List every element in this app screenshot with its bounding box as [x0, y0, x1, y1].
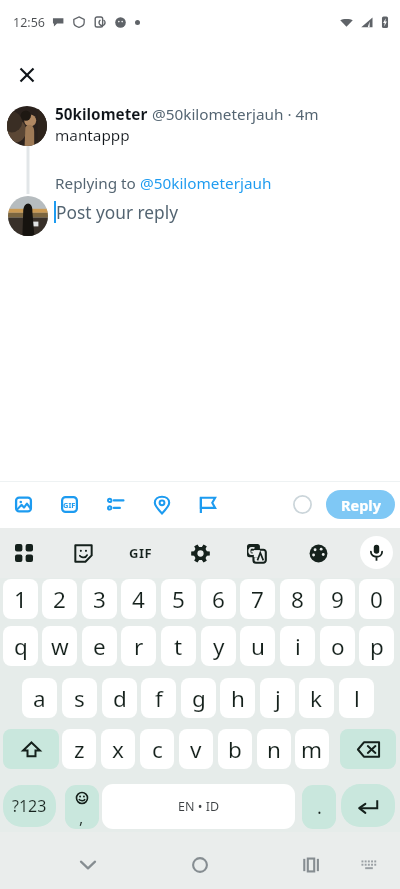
button[interactable]: e: [82, 626, 117, 666]
button[interactable]: j: [260, 678, 295, 718]
button[interactable]: 8: [280, 579, 315, 619]
staticText: p: [370, 631, 384, 662]
button[interactable]: GIF: [119, 531, 163, 575]
staticText: 2: [53, 584, 66, 615]
staticText: 0: [370, 584, 383, 615]
button[interactable]: Voice input: [360, 536, 393, 569]
staticText: t: [174, 631, 183, 662]
button[interactable]: Your avatar: [8, 196, 48, 236]
button[interactable]: EN • ID: [102, 784, 295, 829]
button[interactable]: s: [62, 678, 97, 718]
staticText: .: [317, 795, 322, 820]
button[interactable]: m: [295, 729, 329, 769]
button[interactable]: 5: [161, 579, 196, 619]
staticText: GIF: [63, 500, 76, 510]
staticText: i: [295, 631, 301, 662]
button[interactable]: Add photo: [3, 484, 44, 525]
button[interactable]: 0: [359, 579, 394, 619]
staticText: x: [112, 734, 124, 765]
staticText: a: [33, 683, 46, 714]
button[interactable]: Home: [184, 849, 216, 881]
staticText: 7: [251, 584, 264, 615]
button[interactable]: u: [240, 626, 275, 666]
button[interactable]: y: [201, 626, 236, 666]
button[interactable]: Close: [6, 54, 47, 95]
staticText: mantappp: [55, 125, 130, 146]
button[interactable]: o: [320, 626, 355, 666]
button[interactable]: b: [218, 729, 252, 769]
staticText: o: [331, 631, 345, 662]
button[interactable]: h: [220, 678, 255, 718]
staticText: 5: [172, 584, 185, 615]
button[interactable]: l: [339, 678, 374, 718]
button[interactable]: 1: [3, 579, 38, 619]
button[interactable]: g: [181, 678, 216, 718]
staticText: 3: [93, 584, 106, 615]
button[interactable]: p: [359, 626, 394, 666]
button[interactable]: Backspace: [340, 729, 396, 769]
staticText: l: [354, 683, 360, 714]
staticText: g: [192, 683, 206, 714]
button[interactable]: Switch keyboard: [360, 856, 377, 873]
button[interactable]: i: [280, 626, 315, 666]
staticText: c: [152, 734, 163, 765]
button[interactable]: x: [101, 729, 135, 769]
button[interactable]: q: [3, 626, 38, 666]
button[interactable]: 50kilometer avatar: [7, 106, 47, 146]
button[interactable]: k: [299, 678, 334, 718]
staticText: e: [93, 631, 106, 662]
button[interactable]: [61, 531, 105, 575]
button[interactable]: 3: [82, 579, 117, 619]
button[interactable]: Add location: [141, 484, 182, 525]
button[interactable]: t: [161, 626, 196, 666]
button[interactable]: d: [102, 678, 137, 718]
button[interactable]: f: [141, 678, 176, 718]
button[interactable]: Community note: [187, 484, 228, 525]
staticText: Post your reply: [56, 201, 179, 225]
button[interactable]: Add GIF: [49, 484, 90, 525]
staticText: 50kilometer: [55, 104, 148, 125]
staticText: 8: [291, 584, 304, 615]
button[interactable]: [2, 531, 46, 575]
staticText: s: [74, 683, 85, 714]
button[interactable]: r: [121, 626, 156, 666]
staticText: h: [231, 683, 245, 714]
staticText: u: [251, 631, 265, 662]
staticText: ,: [79, 807, 84, 829]
button[interactable]: [296, 531, 340, 575]
button[interactable]: G: [234, 531, 278, 575]
staticText: 1: [14, 584, 27, 615]
button[interactable]: .: [302, 785, 336, 829]
staticText: z: [74, 734, 85, 765]
staticText: G: [248, 544, 256, 558]
staticText: 6: [212, 584, 225, 615]
button[interactable]: @50kilometerjauh: [140, 173, 272, 194]
button[interactable]: 7: [240, 579, 275, 619]
button[interactable]: w: [42, 626, 77, 666]
button[interactable]: Hide keyboard: [72, 849, 104, 881]
button[interactable]: 2: [42, 579, 77, 619]
staticText: n: [267, 734, 281, 765]
button[interactable]: Add poll: [95, 484, 136, 525]
button[interactable]: [178, 531, 222, 575]
staticText: w: [51, 631, 69, 662]
staticText: @50kilometerjauh · 4m: [152, 104, 319, 125]
button[interactable]: Shift: [3, 729, 59, 769]
button[interactable]: z: [62, 729, 96, 769]
staticText: 9: [331, 584, 344, 615]
button[interactable]: 6: [201, 579, 236, 619]
button[interactable]: a: [22, 678, 57, 718]
button[interactable]: n: [257, 729, 291, 769]
button[interactable]: 9: [320, 579, 355, 619]
button[interactable]: v: [179, 729, 213, 769]
staticText: ?123: [12, 795, 47, 817]
staticText: k: [310, 683, 323, 714]
button[interactable]: c: [140, 729, 174, 769]
button[interactable]: Recents: [295, 849, 327, 881]
button[interactable]: ?123: [3, 785, 56, 827]
button[interactable]: 4: [121, 579, 156, 619]
staticText: Replying to: [55, 173, 140, 194]
button[interactable]: Emoji and comma: [65, 785, 99, 829]
button[interactable]: Reply: [326, 490, 395, 519]
button[interactable]: Enter: [341, 784, 395, 827]
